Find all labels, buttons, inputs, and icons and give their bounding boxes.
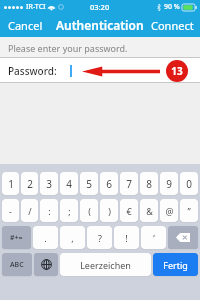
button[interactable]: 4 <box>60 172 78 195</box>
staticText: . <box>44 232 47 244</box>
staticText: & <box>146 205 153 217</box>
button[interactable]: Change keyboard language <box>34 253 58 276</box>
staticText: Cancel <box>8 18 43 33</box>
button[interactable]: ( <box>80 199 98 222</box>
button[interactable]: Connect <box>145 14 200 37</box>
staticText: 1 <box>8 177 14 191</box>
button[interactable]: : <box>40 199 58 222</box>
button[interactable]: ! <box>114 226 139 249</box>
button[interactable]: Leerzeichen <box>60 253 151 276</box>
staticText: Connect <box>151 18 194 33</box>
button[interactable]: 5 <box>80 172 98 195</box>
button[interactable]: #+= <box>2 226 31 249</box>
button[interactable]: ? <box>87 226 112 249</box>
button[interactable]: Fertig <box>153 253 198 276</box>
button[interactable]: 8 <box>140 172 158 195</box>
staticText: 4 <box>66 177 72 191</box>
button[interactable]: , <box>60 226 85 249</box>
button[interactable]: 3 <box>40 172 58 195</box>
staticText: 2 <box>27 177 33 191</box>
button[interactable]: ABC <box>2 253 32 276</box>
staticText: ( <box>88 205 91 217</box>
staticText: @ <box>165 205 174 217</box>
staticText: Password: <box>8 64 57 78</box>
staticText: 90 % <box>164 2 180 12</box>
button[interactable]: € <box>120 199 138 222</box>
button[interactable]: Cancel <box>0 14 51 37</box>
staticText: ! <box>125 232 128 244</box>
staticText: Fertig <box>163 259 188 271</box>
staticText: 6 <box>106 177 112 191</box>
staticText: € <box>126 205 132 217</box>
button[interactable]: 9 <box>160 172 178 195</box>
button[interactable]: ; <box>60 199 78 222</box>
button[interactable]: & <box>140 199 158 222</box>
staticText: ” <box>187 205 191 217</box>
button[interactable]: ’ <box>141 226 166 249</box>
staticText: 7 <box>126 177 132 191</box>
staticText: : <box>48 205 51 217</box>
staticText: / <box>28 205 32 217</box>
staticText: 13 <box>171 64 183 78</box>
staticText: 8 <box>146 177 152 191</box>
staticText: ? <box>98 232 102 244</box>
button[interactable]: 0 <box>180 172 198 195</box>
staticText: ABC <box>10 260 24 270</box>
staticText: 03:20 <box>90 2 110 12</box>
button[interactable]: @ <box>160 199 178 222</box>
staticText: - <box>9 205 12 217</box>
button[interactable]: ) <box>100 199 118 222</box>
staticText: ) <box>108 205 111 217</box>
staticText: , <box>71 232 74 244</box>
button[interactable]: - <box>2 199 19 222</box>
button[interactable]: / <box>21 199 38 222</box>
button[interactable]: 6 <box>100 172 118 195</box>
button[interactable]: ” <box>180 199 198 222</box>
staticText: 0 <box>186 177 192 191</box>
staticText: IR-TCI <box>26 2 46 12</box>
button[interactable]: 2 <box>21 172 38 195</box>
button[interactable]: Backspace <box>168 226 198 249</box>
staticText: Please enter your password. <box>8 42 128 54</box>
button[interactable]: . <box>33 226 58 249</box>
button[interactable]: 7 <box>120 172 138 195</box>
staticText: Leerzeichen <box>80 259 131 271</box>
staticText: ; <box>68 205 71 217</box>
staticText: 3 <box>46 177 52 191</box>
staticText: 5 <box>86 177 92 191</box>
staticText: 9 <box>166 177 172 191</box>
staticText: #+= <box>10 233 23 243</box>
button[interactable]: 1 <box>2 172 19 195</box>
staticText: Authentication <box>56 17 144 33</box>
staticText: ’ <box>153 232 155 244</box>
